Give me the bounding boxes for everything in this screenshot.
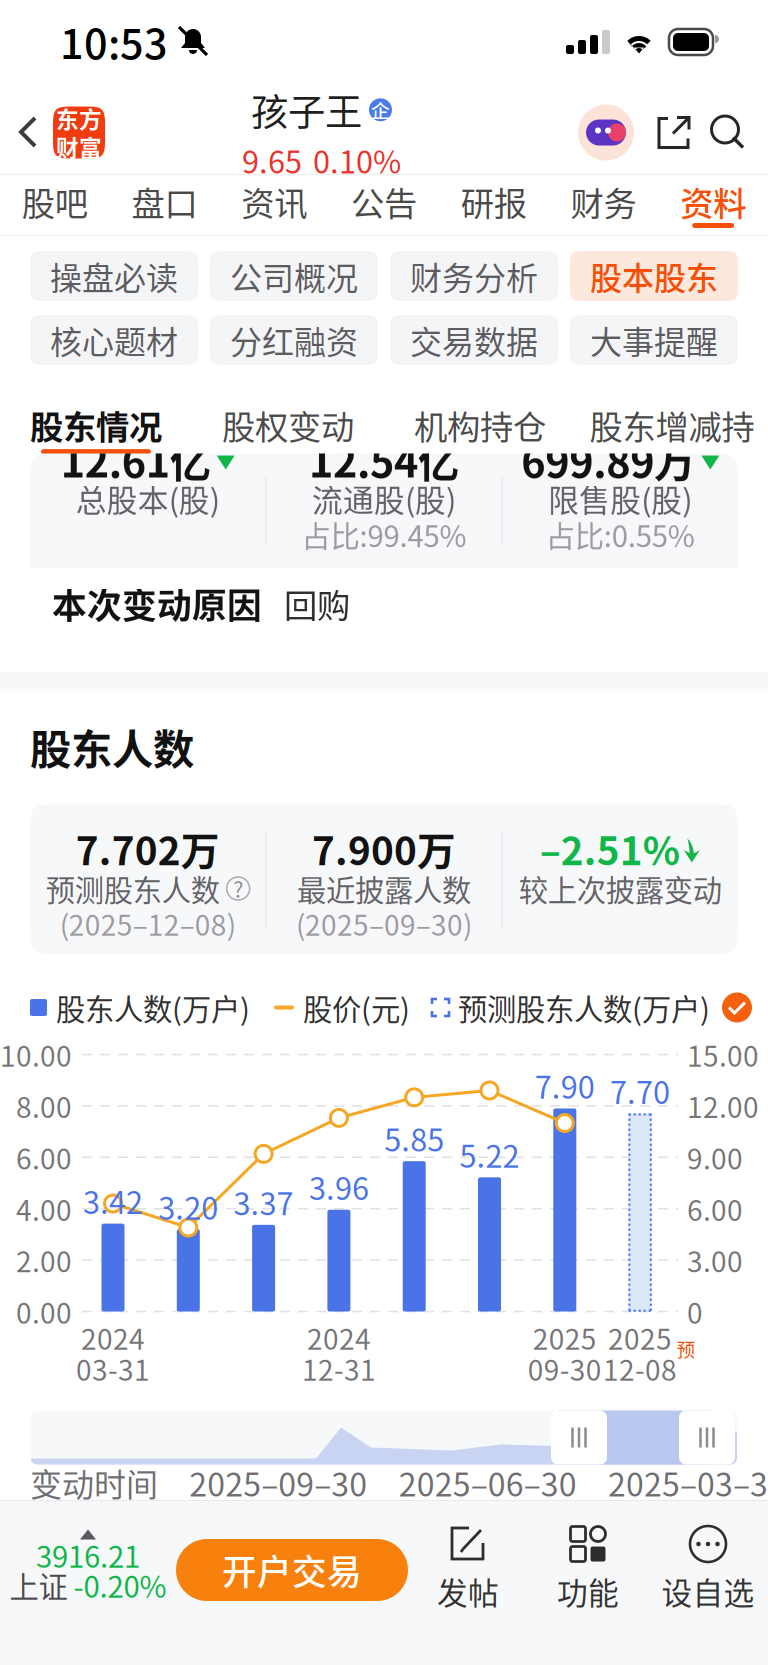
staticText: 企 [371, 96, 390, 123]
staticText: 3.42 [83, 1178, 143, 1223]
staticText: 03-31 [76, 1348, 150, 1389]
button[interactable]: 发帖 [408, 1525, 528, 1615]
button[interactable]: 返回 [0, 90, 53, 175]
staticText: 股东人数 [30, 717, 194, 776]
staticText: 7.900万 [312, 820, 456, 876]
button[interactable]: 股权变动 [192, 379, 384, 454]
staticText: 占比:99.45% [301, 513, 466, 556]
button[interactable]: 3916.21 [0, 1529, 176, 1611]
button[interactable]: 研报 [439, 175, 549, 236]
staticText: 2025–03–3 [608, 1459, 768, 1506]
staticText: –2.51% [540, 820, 680, 876]
button[interactable]: 资料 [658, 175, 768, 236]
staticText: 2025–06–30 [399, 1459, 577, 1506]
staticText: 核心题材 [50, 317, 178, 363]
staticText: 0.00 [16, 1291, 72, 1332]
staticText: 7.90 [535, 1063, 595, 1108]
button[interactable]: 操盘必读 [30, 251, 198, 301]
staticText: 公司概况 [230, 253, 358, 299]
staticText: 0 [687, 1291, 703, 1332]
staticText: 变动时间 [30, 1459, 158, 1506]
staticText: 预测股东人数(万户) [458, 986, 710, 1029]
button[interactable]: 开户交易 [176, 1539, 408, 1601]
staticText: 发帖 [437, 1569, 499, 1613]
button[interactable]: 交易数据 [390, 315, 558, 365]
button[interactable]: 股本股东 [570, 251, 738, 301]
button[interactable]: 东方财富 [53, 106, 105, 158]
staticText: 2024 [81, 1317, 145, 1358]
staticText: 3.37 [234, 1180, 294, 1224]
staticText: 2025 [608, 1317, 672, 1358]
staticText: 09-30 [528, 1348, 602, 1389]
staticText: 孩子王 [251, 83, 362, 137]
staticText: 3.20 [158, 1184, 218, 1228]
staticText: 股本股东 [590, 253, 718, 299]
button[interactable]: 大事提醒 [570, 315, 738, 365]
staticText: 资讯 [241, 177, 307, 226]
staticText: 功能 [557, 1569, 619, 1613]
button[interactable]: 股东增减持 [576, 379, 768, 454]
staticText: 本次变动原因 [52, 578, 262, 629]
button[interactable]: 盘口 [110, 175, 219, 236]
staticText: (2025–12–08) [60, 903, 236, 944]
staticText: 股东情况 [30, 401, 162, 449]
staticText: 股权变动 [222, 401, 354, 449]
staticText: 回购 [284, 579, 350, 628]
staticText: 股价(元) [303, 986, 410, 1029]
button[interactable]: 财务分析 [390, 251, 558, 301]
button[interactable]: 财务 [549, 175, 658, 236]
staticText: 预测股东人数 [46, 867, 220, 910]
staticText: 12.00 [687, 1086, 759, 1126]
staticText: 5.85 [384, 1116, 444, 1160]
staticText: 0.10% [313, 138, 401, 182]
staticText: 上证 [9, 1564, 67, 1606]
staticText: 9.00 [687, 1137, 743, 1177]
button[interactable]: 公司概况 [210, 251, 378, 301]
staticText: 3.96 [309, 1164, 369, 1209]
staticText: 2.00 [16, 1240, 72, 1280]
staticText: 财务分析 [410, 253, 538, 299]
staticText: 财务 [570, 177, 636, 226]
staticText: 5.22 [459, 1132, 519, 1176]
button[interactable]: 功能 [528, 1525, 648, 1615]
staticText: 总股本(股) [76, 476, 220, 521]
staticText: (2025–09–30) [296, 903, 472, 944]
staticText: 股吧 [22, 177, 88, 226]
button[interactable]: 分享 [634, 90, 710, 175]
staticText: 7.702万 [76, 820, 220, 876]
staticText: 3.00 [687, 1240, 743, 1280]
staticText: 3916.21 [36, 1534, 140, 1576]
staticText: 12-08 [603, 1348, 677, 1389]
staticText: 10:53 [60, 11, 168, 71]
staticText: 较上次披露变动 [519, 867, 722, 910]
button[interactable]: 搜索 [710, 90, 768, 175]
staticText: 2024 [307, 1317, 371, 1358]
staticText: 设自选 [661, 1569, 754, 1613]
staticText: 最近披露人数 [297, 867, 471, 910]
staticText: 流通股(股) [312, 476, 456, 521]
staticText: 7.70 [610, 1068, 670, 1113]
button[interactable]: 股吧 [0, 175, 110, 236]
staticText: 交易数据 [410, 317, 538, 363]
button[interactable]: AI助手 [578, 104, 634, 160]
staticText: 9.65 [242, 138, 302, 182]
staticText: ? [233, 873, 243, 904]
button[interactable]: 设自选 [648, 1525, 768, 1615]
staticText: 大事提醒 [590, 317, 718, 363]
staticText: 分红融资 [230, 317, 358, 363]
staticText: 股东增减持 [589, 401, 754, 449]
staticText: 盘口 [132, 177, 198, 226]
staticText: 研报 [461, 177, 527, 226]
staticText: 12.54亿 [309, 430, 459, 489]
staticText: 预 [677, 1335, 696, 1362]
button[interactable]: 分红融资 [210, 315, 378, 365]
button[interactable]: 资讯 [219, 175, 329, 236]
staticText: 10.00 [0, 1034, 72, 1075]
staticText: 资料 [680, 177, 746, 226]
button[interactable]: 核心题材 [30, 315, 198, 365]
button[interactable]: 机构持仓 [384, 379, 576, 454]
button[interactable]: 股东情况 [0, 379, 192, 454]
button[interactable]: 公告 [329, 175, 439, 236]
staticText: 东方 [56, 102, 102, 134]
